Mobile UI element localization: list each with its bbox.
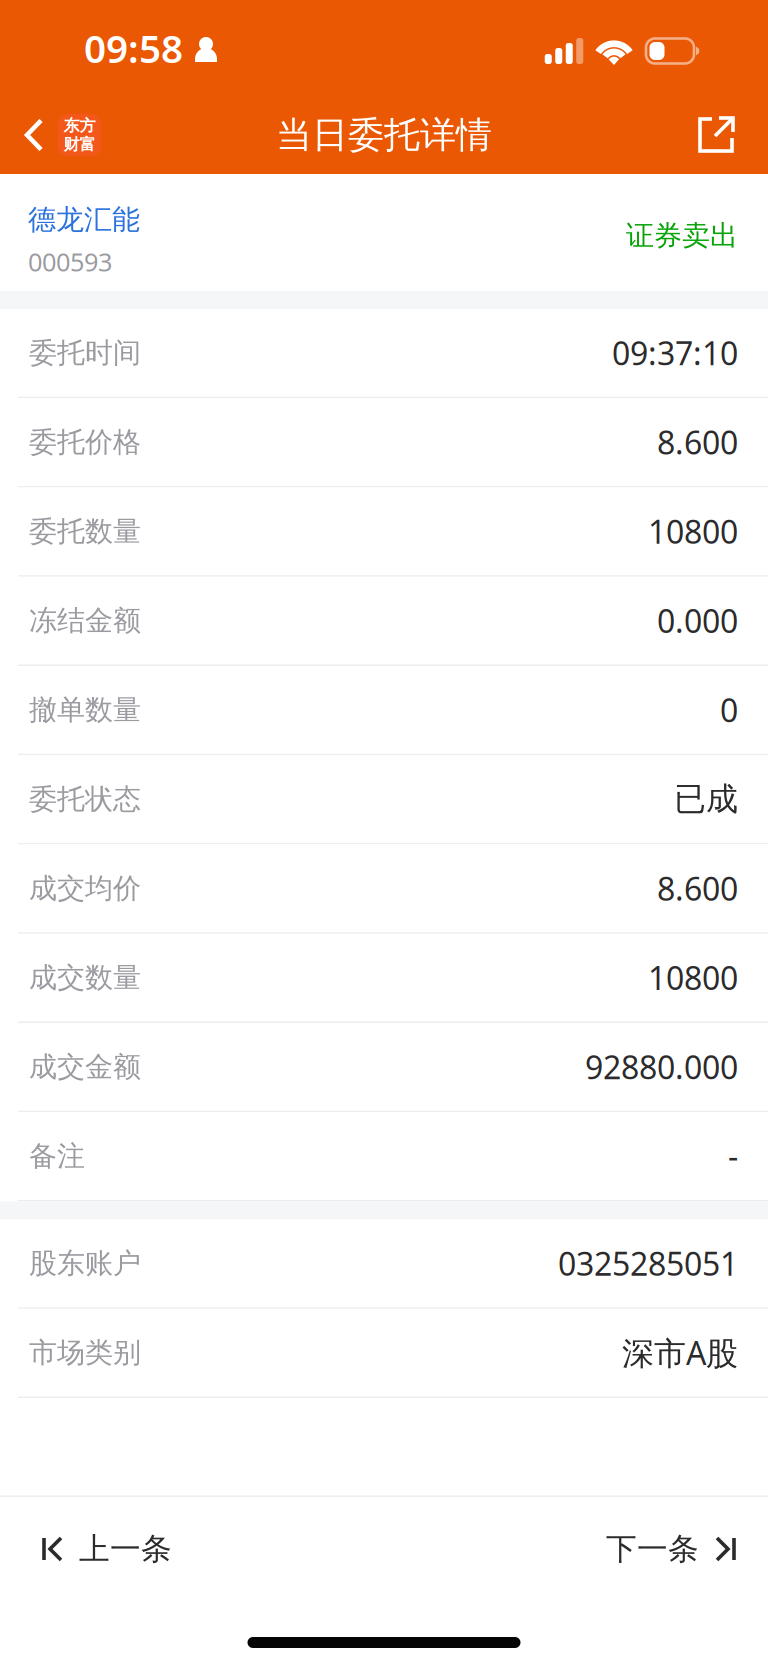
staticText: 股东账户 <box>29 1246 141 1281</box>
staticText: 0 <box>720 689 738 731</box>
button[interactable]: 返回东方财富 <box>0 96 113 174</box>
staticText: 09:58 <box>84 22 183 74</box>
staticText: 证券卖出 <box>626 218 738 253</box>
button[interactable]: 下一条 <box>570 1497 768 1593</box>
staticText: 撤单数量 <box>29 693 141 727</box>
staticText: 000593 <box>28 245 112 278</box>
staticText: 成交数量 <box>29 960 141 995</box>
staticText: 09:37:10 <box>612 332 738 374</box>
staticText: 当日委托详情 <box>276 113 492 157</box>
staticText: 成交金额 <box>29 1050 141 1084</box>
staticText: 委托状态 <box>29 782 141 816</box>
staticText: 委托数量 <box>29 514 141 549</box>
staticText: 0.000 <box>657 599 738 642</box>
staticText: 委托时间 <box>29 336 141 370</box>
staticText: 深市A股 <box>622 1331 738 1374</box>
staticText: 8.600 <box>657 867 738 910</box>
staticText: 成交均价 <box>29 871 141 906</box>
staticText: 委托价格 <box>29 425 141 459</box>
staticText: 财富 <box>63 134 95 154</box>
staticText: 市场类别 <box>29 1335 141 1370</box>
staticText: 8.600 <box>657 421 738 463</box>
staticText: 下一条 <box>606 1530 699 1568</box>
button[interactable]: 分享 <box>675 96 768 174</box>
staticText: 德龙汇能 <box>28 202 140 237</box>
staticText: 备注 <box>29 1139 85 1173</box>
staticText: 已成 <box>674 779 738 819</box>
staticText: 10800 <box>648 956 738 999</box>
staticText: 92880.000 <box>585 1046 738 1088</box>
staticText: 东方 <box>63 116 95 135</box>
staticText: 上一条 <box>79 1530 172 1568</box>
staticText: 10800 <box>648 510 738 553</box>
staticText: 0325285051 <box>558 1242 738 1285</box>
button[interactable]: 上一条 <box>0 1497 208 1593</box>
staticText: - <box>728 1135 738 1177</box>
staticText: 冻结金额 <box>29 603 141 638</box>
